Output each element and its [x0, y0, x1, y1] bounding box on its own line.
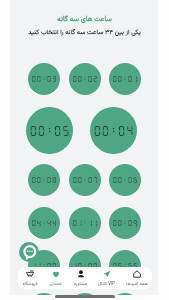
button[interactable]: همدلی	[48, 270, 63, 287]
staticText: کانال VIP	[98, 280, 115, 287]
button[interactable]: 05:55	[109, 250, 141, 282]
staticText: 00:04	[93, 124, 134, 137]
button[interactable]: Chat support	[19, 242, 39, 262]
button[interactable]: همه امیدها	[125, 270, 149, 287]
staticText: 00:09	[112, 219, 138, 227]
button[interactable]: 00:01	[109, 63, 141, 95]
staticText: همدلی	[49, 280, 62, 287]
button[interactable]: 00:08	[28, 164, 60, 196]
button[interactable]: 00:04	[90, 107, 137, 154]
staticText: مشاوره	[74, 280, 87, 287]
button[interactable]: 00:09	[109, 207, 141, 239]
staticText: 00:07	[72, 176, 98, 184]
button[interactable]: 03:33	[69, 293, 101, 295]
button[interactable]: 02:22	[28, 293, 60, 295]
staticText: همه امیدها	[126, 280, 148, 287]
button[interactable]: فروشگاه	[21, 270, 39, 287]
button[interactable]: 00:07	[69, 164, 101, 196]
staticText: 05:55	[112, 262, 138, 270]
staticText: 00:02	[72, 75, 98, 83]
staticText: فروشگاه	[22, 280, 38, 287]
staticText: ساعت های سه گانه	[0, 14, 169, 25]
staticText: یکی از بین ۳۴ ساعت سه گانه را انتخاب کنی…	[0, 27, 169, 37]
button[interactable]: 00:03	[28, 63, 60, 95]
staticText: 00:01	[112, 75, 138, 83]
button[interactable]: 10:00	[69, 250, 101, 282]
staticText: 00:08	[31, 176, 57, 184]
staticText: 04:44	[31, 219, 57, 227]
button[interactable]: 04:44	[28, 207, 60, 239]
staticText: 10:00	[72, 262, 98, 270]
staticText: 11:00	[31, 262, 57, 270]
button[interactable]: 11:00	[28, 250, 60, 282]
staticText: 01:11	[72, 219, 98, 227]
button[interactable]: مشاوره	[73, 270, 88, 287]
staticText: 00:03	[31, 75, 57, 83]
staticText: 00:05	[29, 124, 70, 137]
button[interactable]: 06:06	[109, 293, 141, 295]
button[interactable]: 01:11	[69, 207, 101, 239]
button[interactable]: 00:05	[26, 107, 73, 154]
button[interactable]: 00:02	[69, 63, 101, 95]
button[interactable]: کانال VIP	[97, 270, 116, 287]
staticText: 00:06	[112, 176, 138, 184]
button[interactable]: 00:06	[109, 164, 141, 196]
